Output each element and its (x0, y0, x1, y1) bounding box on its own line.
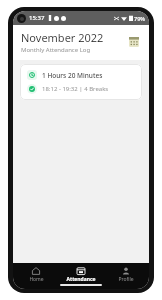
button[interactable]: Select month (127, 35, 141, 49)
staticText: 18:12 - 19:32 | 4 Breaks (42, 85, 109, 93)
staticText: Profile (118, 276, 134, 283)
staticText: November 2022 (21, 30, 104, 45)
staticText: Attendance (66, 276, 96, 283)
button[interactable]: 1 Hours 20 Minutes (20, 64, 142, 100)
button[interactable]: Profile (104, 266, 148, 284)
button[interactable]: Attendance (59, 266, 103, 284)
staticText: Monthly Attendance Log (21, 46, 91, 54)
staticText: 79% (134, 15, 145, 22)
button[interactable]: Home (14, 266, 58, 284)
staticText: 1 Hours 20 Minutes (42, 71, 103, 80)
staticText: Home (29, 276, 44, 283)
staticText: 15:37 (29, 14, 45, 22)
